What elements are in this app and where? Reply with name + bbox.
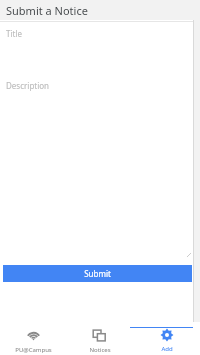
- button[interactable]: Notices: [66, 322, 133, 355]
- staticText: Description: [6, 80, 50, 91]
- staticText: Add: [161, 345, 173, 353]
- button[interactable]: Submit: [3, 265, 192, 282]
- other: PU@Campus WiFi: [26, 328, 41, 343]
- button[interactable]: Add: [133, 322, 200, 355]
- button[interactable]: Title: [0, 22, 200, 77]
- staticText: PU@Campus: [15, 346, 52, 354]
- other: Notices: [92, 328, 107, 343]
- staticText: Notices: [89, 346, 111, 354]
- staticText: Submit: [84, 268, 111, 279]
- button[interactable]: PU@Campus WiFi: [0, 322, 66, 355]
- staticText: Title: [6, 28, 22, 39]
- staticText: Submit a Notice: [6, 3, 88, 18]
- other: Add: [160, 328, 174, 342]
- button[interactable]: Description: [0, 77, 200, 260]
